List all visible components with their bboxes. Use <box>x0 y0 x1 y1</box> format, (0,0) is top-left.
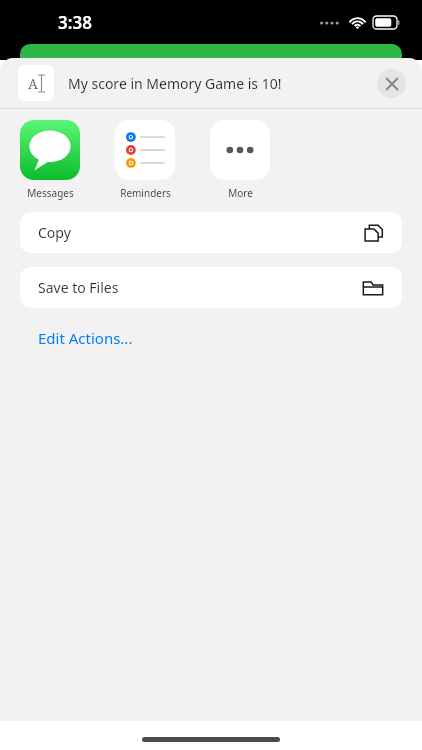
staticText: A <box>28 74 38 93</box>
staticText: More <box>228 186 253 200</box>
button[interactable]: Reminders <box>115 120 175 200</box>
staticText: Copy <box>38 223 363 242</box>
staticText: My score in Memory Game is 10! <box>68 74 377 93</box>
staticText: Reminders <box>120 186 171 200</box>
button[interactable]: Edit Actions... <box>20 322 151 354</box>
staticText: Edit Actions... <box>38 328 133 348</box>
button[interactable]: Close <box>377 69 406 98</box>
staticText: 3:38 <box>58 11 92 34</box>
staticText: Save to Files <box>38 278 362 297</box>
button[interactable]: Save to Files <box>20 267 402 308</box>
button[interactable]: More <box>210 120 270 200</box>
button[interactable]: Messages <box>20 120 80 200</box>
button[interactable]: Copy <box>20 212 402 253</box>
staticText: Messages <box>27 186 74 200</box>
